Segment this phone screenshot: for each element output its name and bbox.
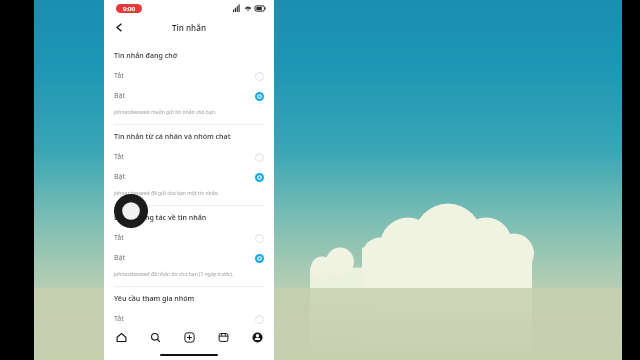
button[interactable]: Bật xyxy=(104,251,274,265)
staticText: johnazzlesseed đã gửi cho bạn một tin nh… xyxy=(114,190,219,197)
staticText: Tin nhắn đang chờ xyxy=(114,51,178,61)
button[interactable]: Search xyxy=(138,325,172,349)
staticText: Bật xyxy=(114,253,126,263)
button[interactable]: Home xyxy=(104,325,138,349)
staticText: 9:00 xyxy=(123,5,135,13)
button[interactable]: Tắt xyxy=(104,313,274,325)
staticText: Tin nhắn từ cá nhân và nhóm chat xyxy=(114,132,231,142)
button[interactable]: Tắt xyxy=(104,231,274,245)
staticText: Bật xyxy=(114,172,126,182)
staticText: Tắt xyxy=(114,71,124,81)
staticText: Yêu cầu tham gia nhóm xyxy=(114,294,195,304)
staticText: Tắt xyxy=(114,314,124,324)
staticText: Lượt tương tác về tin nhắn xyxy=(114,213,207,223)
staticText: Tắt xyxy=(114,233,124,243)
staticText: johnazzlesseed đã nhắn tin cho bạn (1 ng… xyxy=(114,271,234,278)
staticText: Tin nhắn xyxy=(172,22,206,33)
button[interactable]: Profile xyxy=(240,325,274,349)
button[interactable]: Back xyxy=(110,18,128,36)
button[interactable]: Bật xyxy=(104,89,274,103)
staticText: Tắt xyxy=(114,152,124,162)
button[interactable]: Reels xyxy=(206,325,240,349)
button[interactable]: Create xyxy=(172,325,206,349)
button[interactable]: Bật xyxy=(104,170,274,184)
button[interactable]: Tắt xyxy=(104,69,274,83)
button[interactable]: Tắt xyxy=(104,150,274,164)
staticText: Bật xyxy=(114,91,126,101)
staticText: johnazzlesseed muốn gửi tin nhắn cho bạn… xyxy=(114,109,217,116)
